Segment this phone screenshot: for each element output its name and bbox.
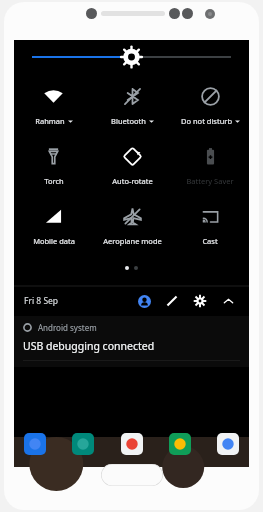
button[interactable]: App [169, 433, 191, 455]
button[interactable]: Battery Saver [171, 144, 249, 188]
button[interactable]: Mobile data [14, 204, 93, 248]
button[interactable]: Rahman [14, 84, 93, 128]
button[interactable]: Edit [161, 290, 183, 312]
button[interactable]: Collapse [217, 290, 239, 312]
button[interactable]: Cast [171, 204, 249, 248]
button[interactable]: Android system [14, 316, 249, 367]
button[interactable]: Brightness [14, 40, 249, 74]
button[interactable]: User [133, 290, 155, 312]
button[interactable]: Auto-rotate [93, 144, 171, 188]
button[interactable]: Aeroplane mode [93, 204, 171, 248]
staticText: Auto-rotate [112, 176, 153, 186]
button[interactable]: Bluetooth [93, 84, 171, 128]
staticText: Android system [38, 322, 97, 333]
button[interactable]: App [24, 433, 46, 455]
button[interactable]: Settings [189, 290, 211, 312]
staticText: Fri 8 Sep [24, 295, 59, 307]
staticText: Do not disturb [181, 116, 232, 126]
button[interactable]: Home [101, 464, 163, 486]
staticText: Cast [202, 236, 218, 246]
staticText: Bluetooth [111, 116, 146, 126]
button[interactable]: App [217, 433, 239, 455]
button[interactable]: Torch [14, 144, 93, 188]
staticText: Mobile data [33, 236, 75, 246]
button[interactable]: App [72, 433, 94, 455]
button[interactable]: App [121, 433, 143, 455]
staticText: USB debugging connected [23, 339, 155, 353]
staticText: Aeroplane mode [103, 236, 162, 246]
staticText: Rahman [35, 116, 65, 126]
staticText: Torch [44, 176, 64, 186]
staticText: Battery Saver [186, 176, 234, 186]
button[interactable]: Do not disturb [171, 84, 249, 128]
